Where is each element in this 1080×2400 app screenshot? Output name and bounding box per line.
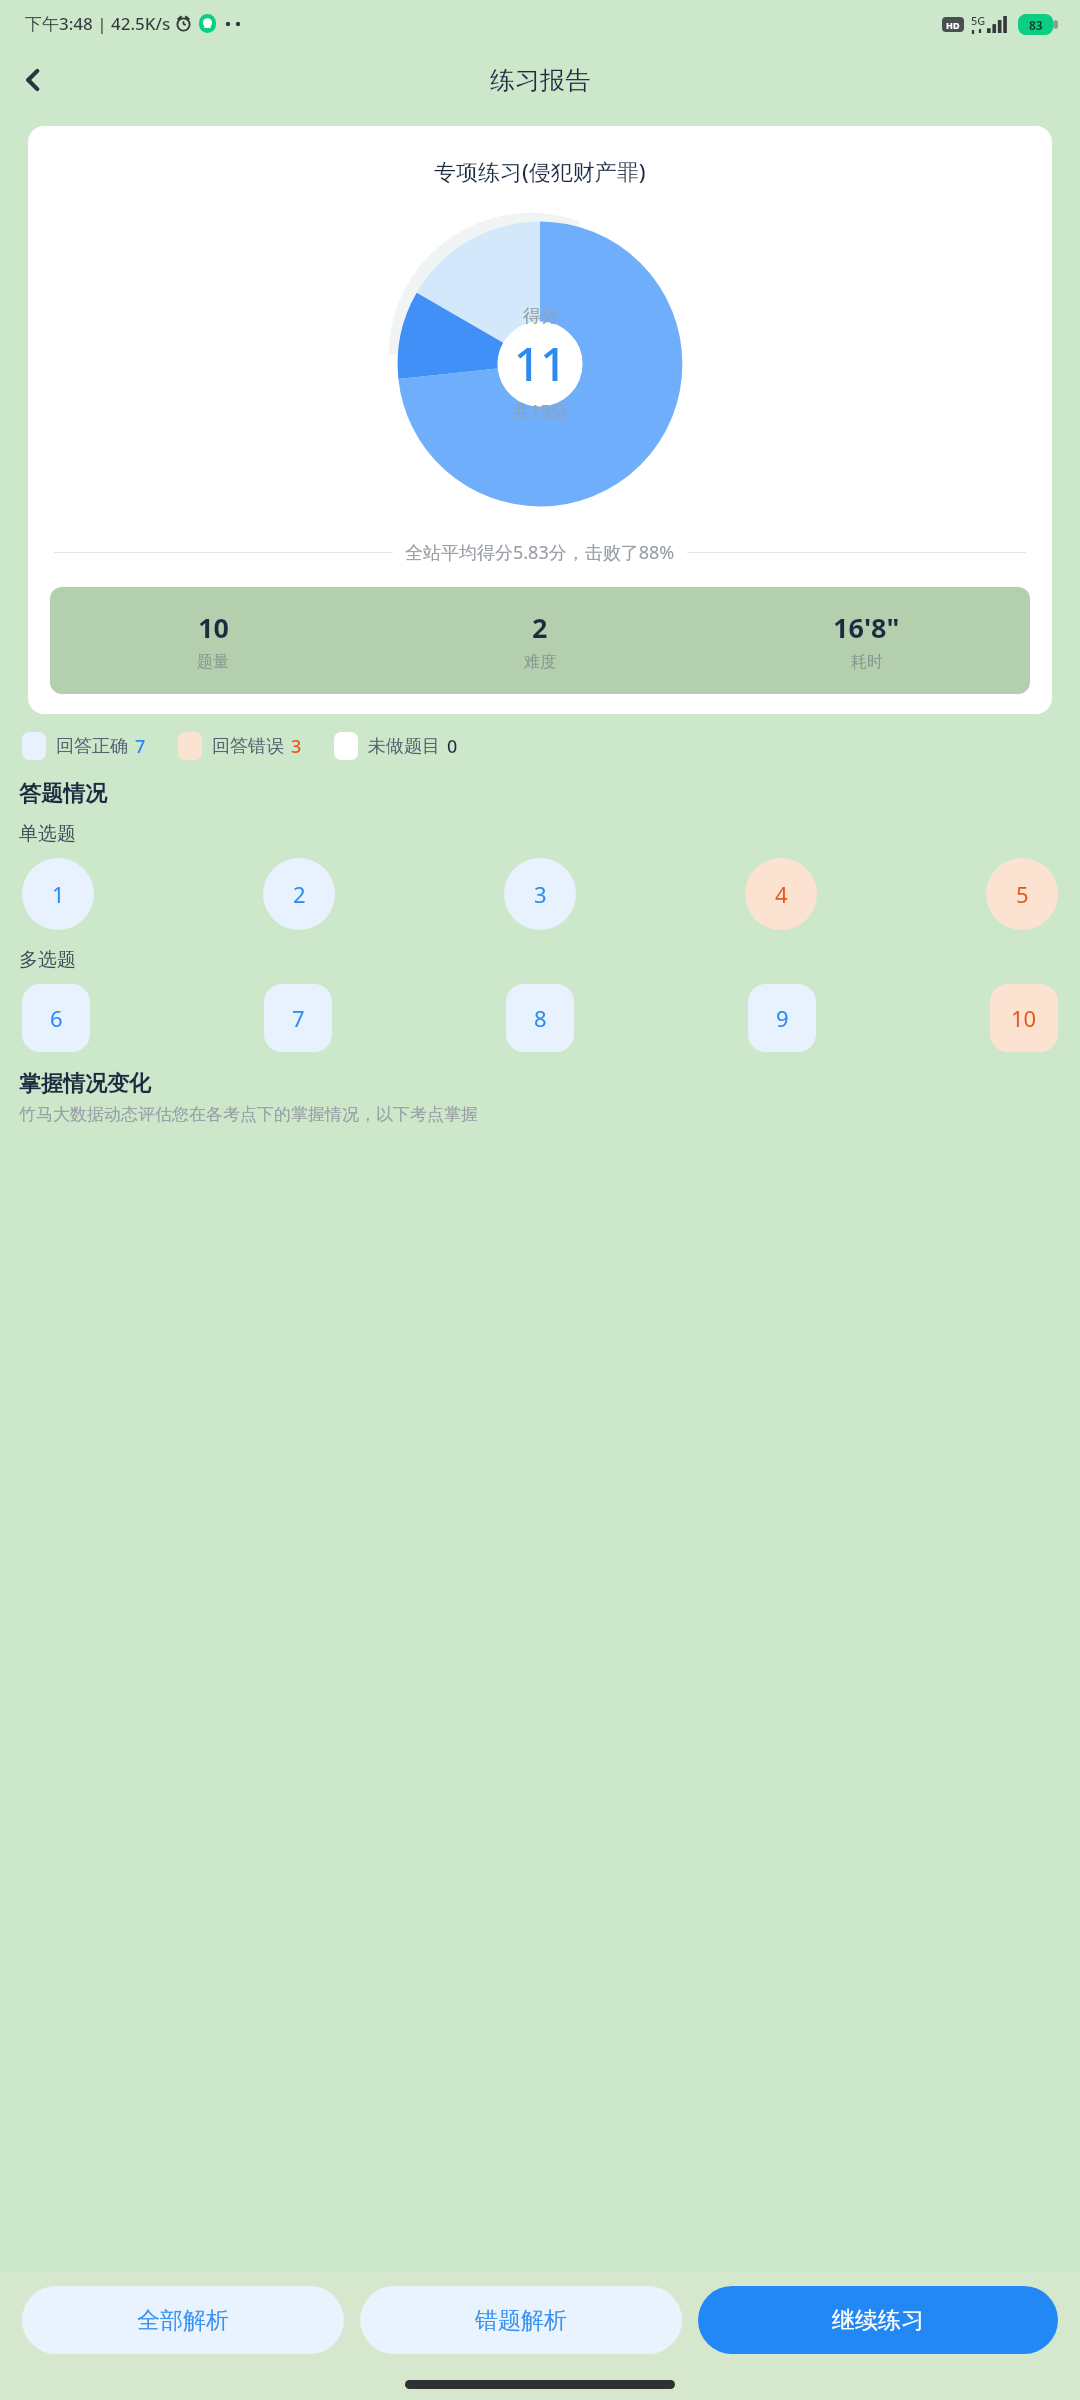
button[interactable]: 5 <box>986 858 1058 930</box>
button[interactable]: 7 <box>264 984 332 1052</box>
staticText: 继续练习 <box>832 2306 924 2335</box>
staticText: 9 <box>776 1003 789 1033</box>
button[interactable]: 2 <box>263 858 335 930</box>
button[interactable]: 继续练习 <box>698 2286 1058 2354</box>
button[interactable]: 8 <box>506 984 574 1052</box>
staticText: 5G <box>971 13 986 28</box>
staticText: 竹马大数据动态评估您在各考点下的掌握情况，以下考点掌握 <box>19 1104 478 1125</box>
staticText: 共15分 <box>512 399 569 424</box>
staticText: 4 <box>775 879 788 909</box>
staticText: 单选题 <box>19 822 76 846</box>
staticText: 1 <box>52 879 65 909</box>
staticText: 10 <box>198 609 229 646</box>
staticText: 6 <box>50 1003 63 1033</box>
staticText: 未做题目 <box>368 735 440 758</box>
staticText: 11 <box>514 332 567 395</box>
staticText: 7 <box>292 1003 305 1033</box>
staticText: 回答错误 <box>212 735 284 758</box>
staticText: 16'8" <box>833 609 900 646</box>
button[interactable]: 10 <box>990 984 1058 1052</box>
staticText: 3 <box>534 879 547 909</box>
staticText: HD <box>946 19 960 31</box>
staticText: 练习报告 <box>490 65 590 96</box>
staticText: 回答正确 <box>56 735 128 758</box>
button[interactable]: 错题解析 <box>360 2286 682 2354</box>
staticText: 全部解析 <box>137 2306 229 2335</box>
button[interactable]: 全部解析 <box>22 2286 344 2354</box>
staticText: 全站平均得分5.83分，击败了88% <box>405 540 675 565</box>
staticText: 3 <box>291 734 302 759</box>
button[interactable]: 6 <box>22 984 90 1052</box>
button[interactable]: 3 <box>504 858 576 930</box>
staticText: 8 <box>534 1003 547 1033</box>
staticText: 83 <box>1029 17 1043 33</box>
staticText: 掌握情况变化 <box>19 1070 151 1098</box>
staticText: 7 <box>135 734 146 759</box>
staticText: 难度 <box>524 652 556 672</box>
staticText: 2 <box>532 609 548 646</box>
staticText: 多选题 <box>19 948 76 972</box>
staticText: 答题情况 <box>19 780 107 808</box>
button[interactable]: 4 <box>745 858 817 930</box>
staticText: 5 <box>1016 879 1029 909</box>
staticText: 2 <box>293 879 306 909</box>
button[interactable]: 返回 <box>6 53 60 107</box>
staticText: 错题解析 <box>475 2306 567 2335</box>
staticText: 10 <box>1011 1003 1037 1033</box>
staticText: 得分 <box>523 305 559 328</box>
button[interactable]: 1 <box>22 858 94 930</box>
staticText: 下午3:48 | 42.5K/s <box>25 12 171 35</box>
staticText: 专项练习(侵犯财产罪) <box>434 156 646 186</box>
staticText: 题量 <box>197 652 229 672</box>
staticText: 耗时 <box>851 652 883 672</box>
staticText: 0 <box>447 734 458 759</box>
button[interactable]: 9 <box>748 984 816 1052</box>
